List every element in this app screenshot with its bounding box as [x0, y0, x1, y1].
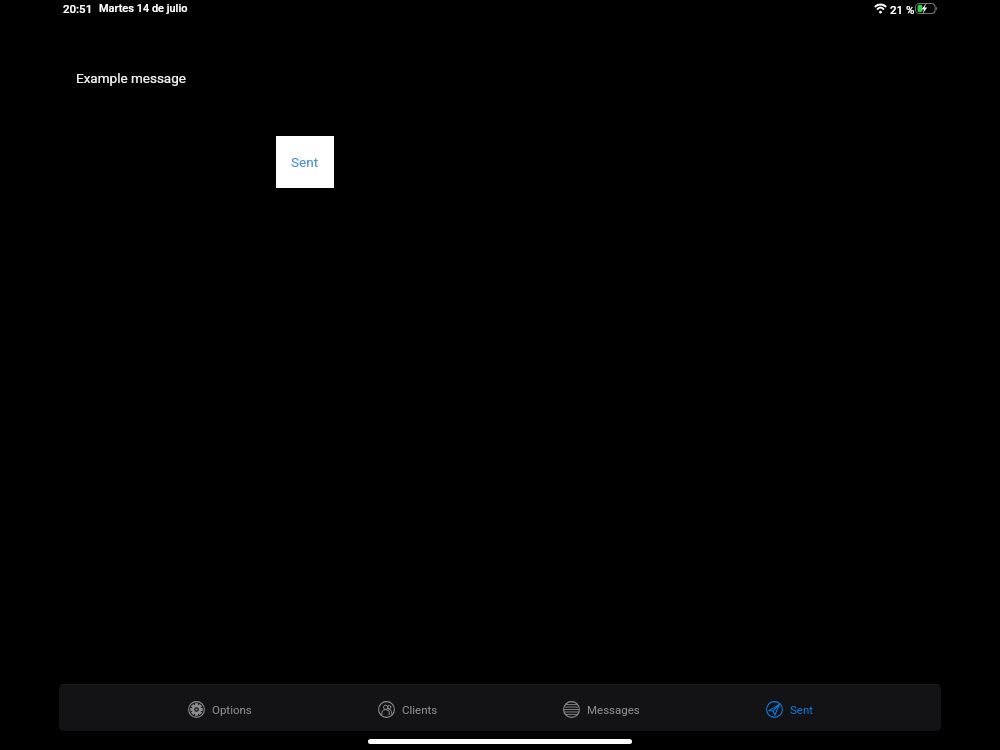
staticText: Example message — [76, 70, 186, 86]
button[interactable]: Sent — [695, 684, 885, 731]
staticText: Options — [212, 703, 252, 716]
staticText: Sent — [291, 154, 319, 170]
staticText: Martes 14 de julio — [99, 2, 188, 15]
other: Battery 21 percent, charging — [915, 3, 937, 14]
button[interactable]: Options — [125, 684, 315, 731]
staticText: Clients — [402, 703, 438, 716]
button[interactable]: Messages — [506, 684, 696, 731]
other: Wi-Fi signal — [874, 3, 887, 14]
button[interactable]: Sent — [276, 136, 334, 188]
button[interactable]: Clients — [313, 684, 503, 731]
staticText: 20:51 — [63, 2, 93, 15]
staticText: Sent — [790, 703, 814, 716]
staticText: Messages — [587, 703, 640, 716]
staticText: 21 % — [890, 3, 915, 16]
